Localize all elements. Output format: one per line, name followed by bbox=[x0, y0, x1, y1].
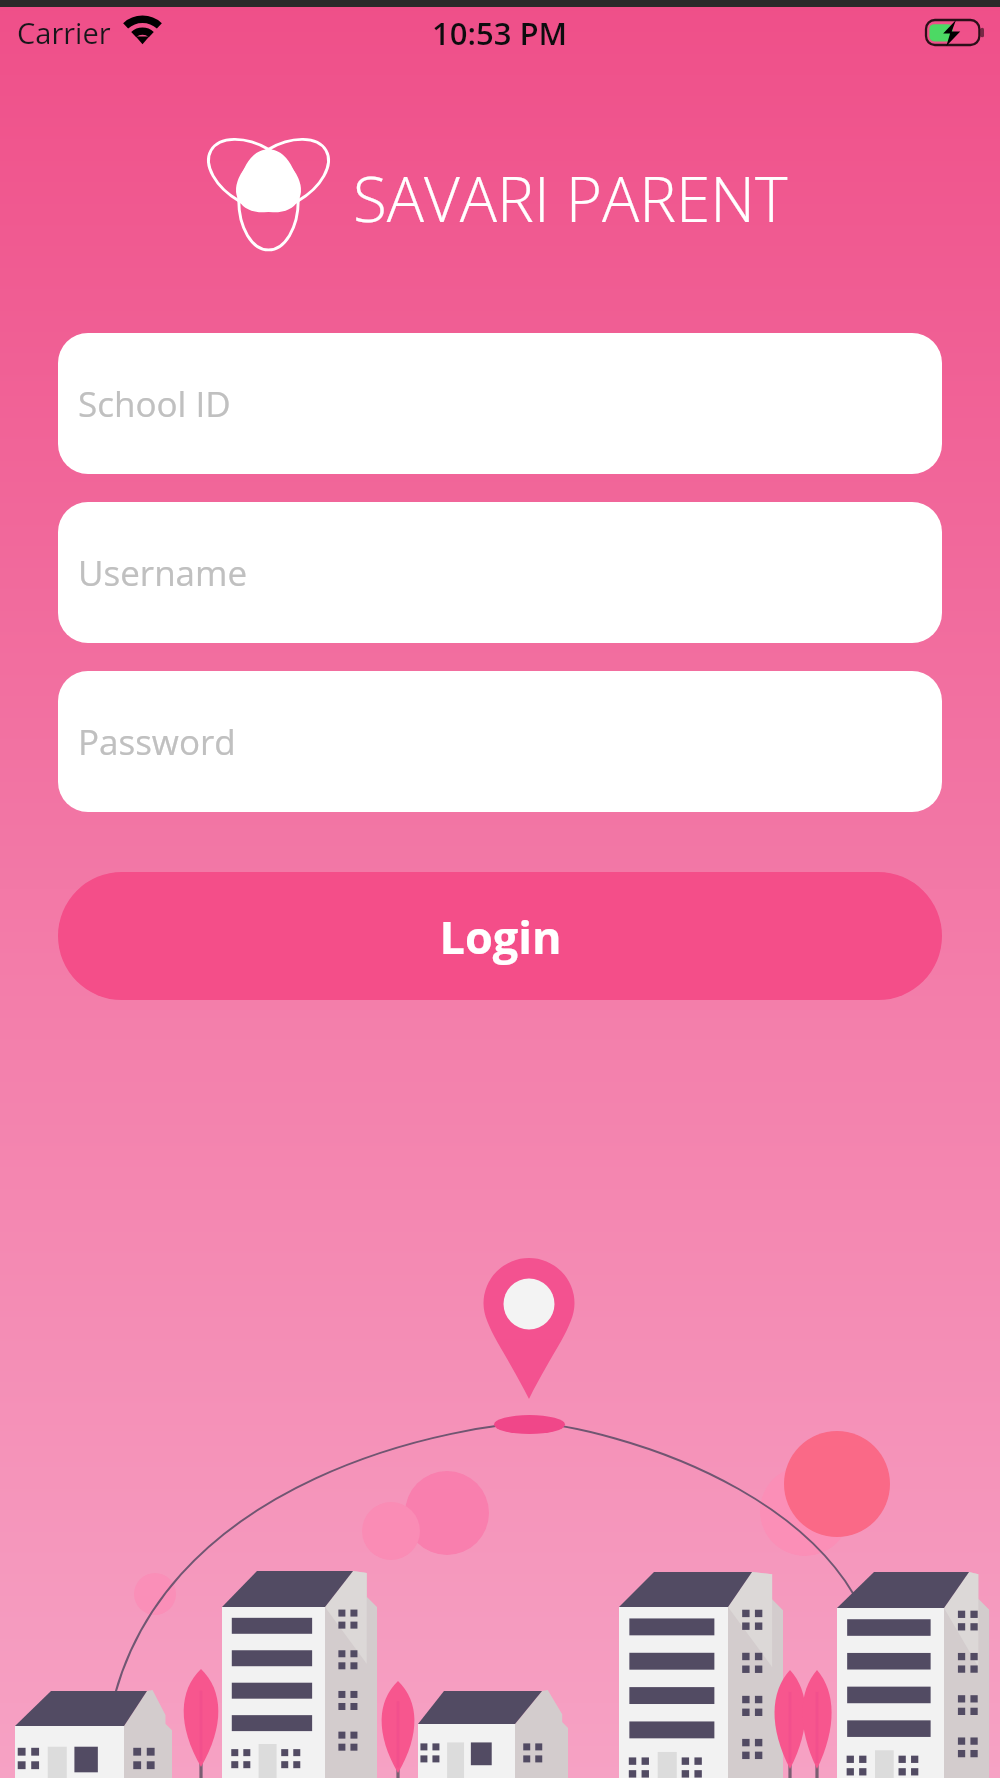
button[interactable]: Password bbox=[58, 671, 942, 812]
staticText: School ID bbox=[78, 380, 231, 428]
staticText: 10:53 PM bbox=[432, 12, 568, 54]
staticText: Login bbox=[439, 906, 562, 967]
button[interactable]: Username bbox=[58, 502, 942, 643]
staticText: Password bbox=[78, 718, 236, 766]
staticText: SAVARI PARENT bbox=[353, 156, 788, 240]
staticText: Username bbox=[78, 549, 248, 597]
button[interactable]: Login bbox=[58, 872, 942, 1000]
button[interactable]: School ID bbox=[58, 333, 942, 474]
staticText: Carrier bbox=[17, 13, 111, 52]
